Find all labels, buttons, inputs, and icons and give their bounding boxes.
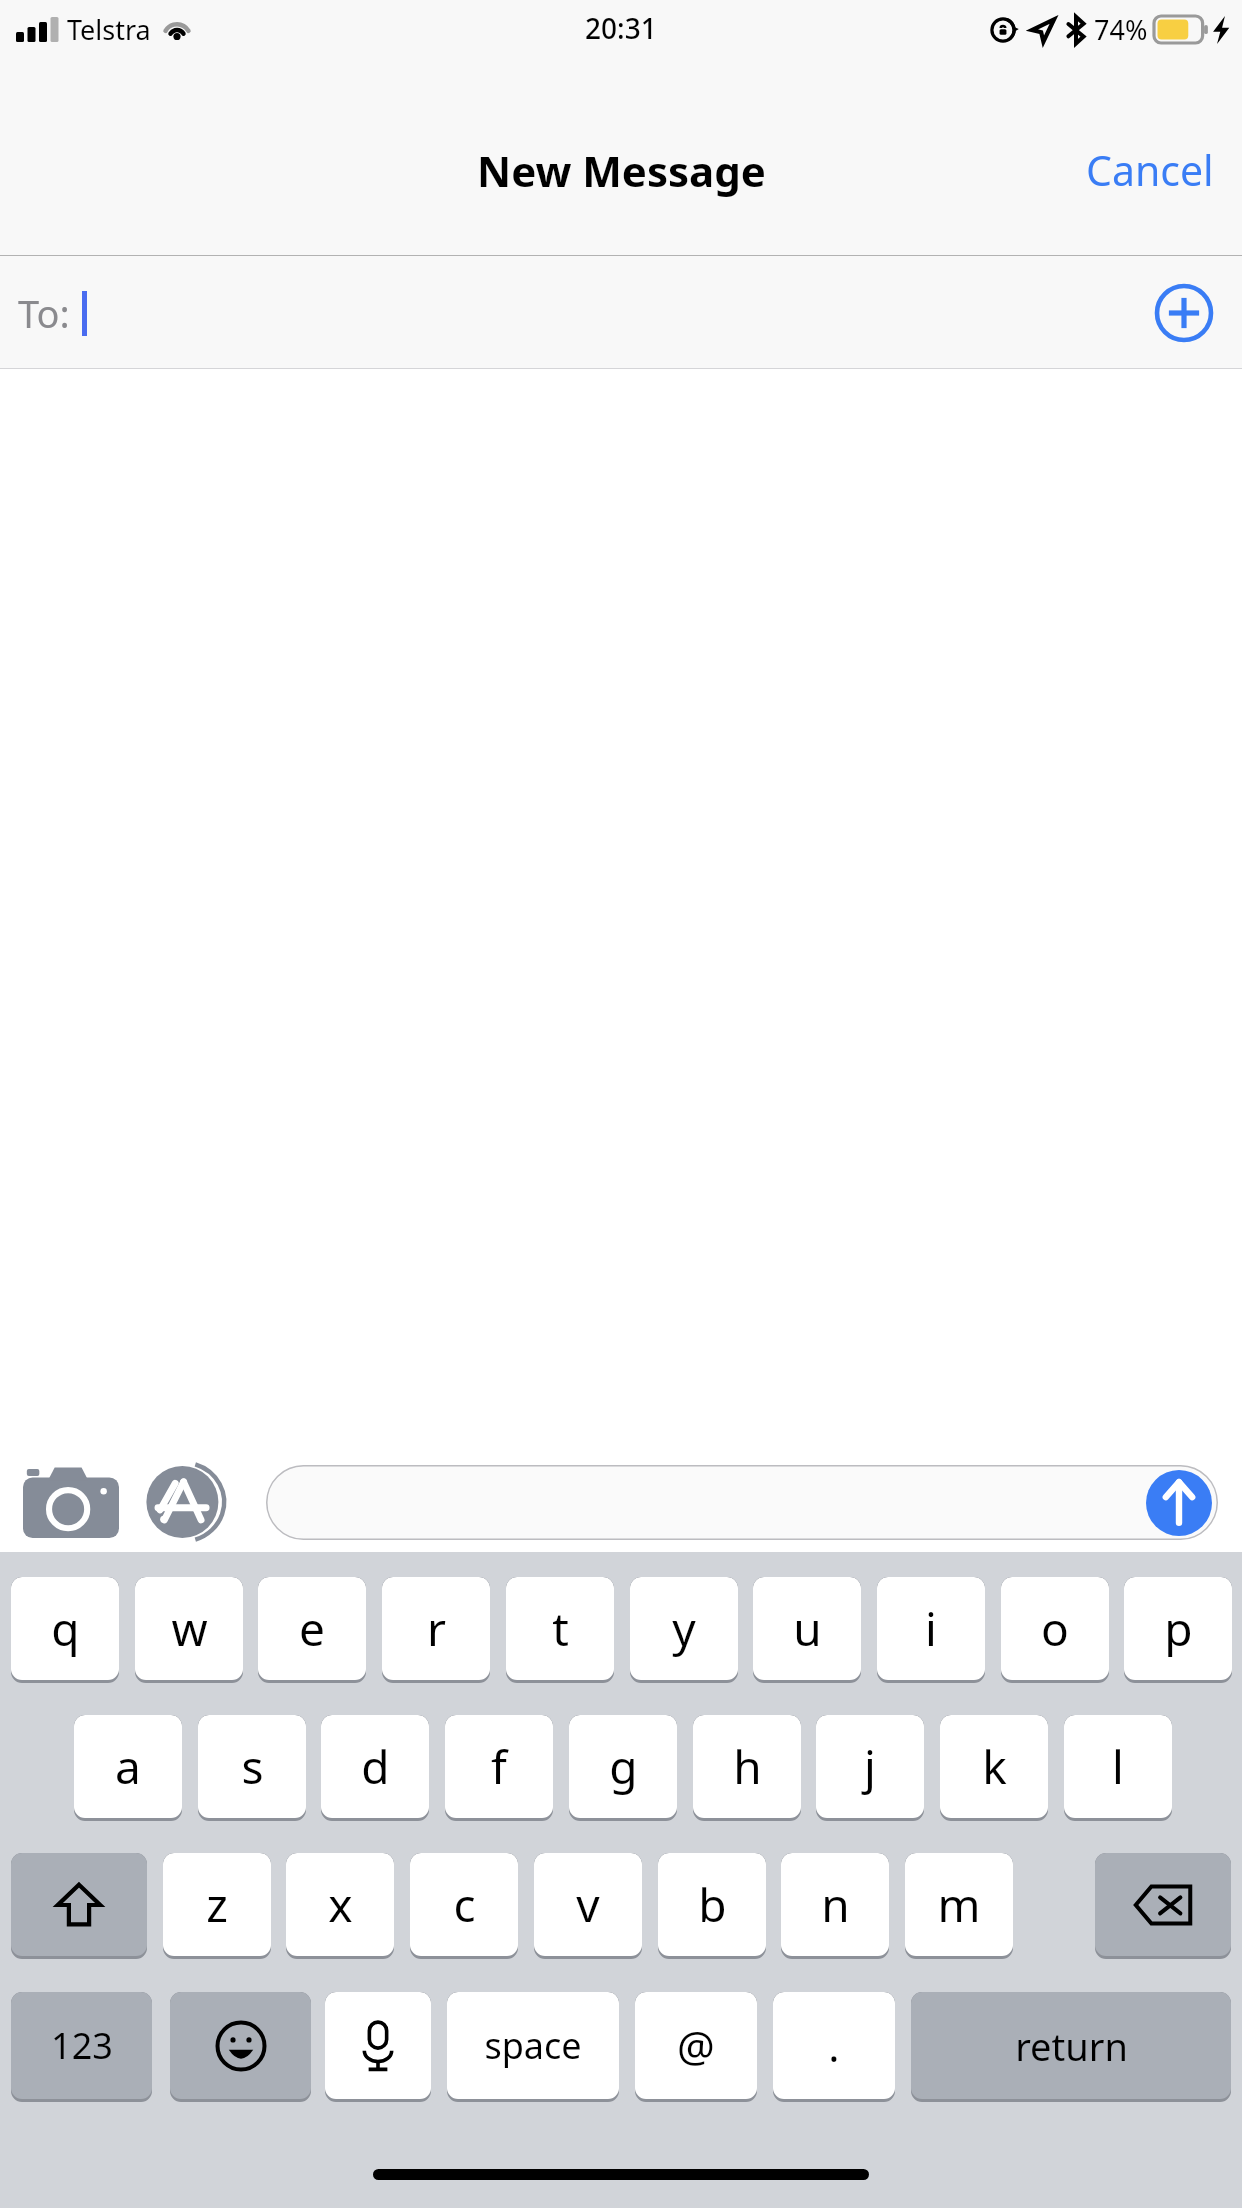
button[interactable]: d xyxy=(321,1715,429,1821)
button[interactable]: To: xyxy=(0,256,1242,369)
button[interactable]: a xyxy=(74,1715,182,1821)
staticText: j xyxy=(864,1735,876,1798)
staticText: u xyxy=(793,1597,822,1660)
button[interactable]: q xyxy=(11,1577,119,1683)
staticText: f xyxy=(491,1735,507,1798)
staticText: e xyxy=(299,1597,325,1660)
staticText: space xyxy=(484,2021,582,2070)
button[interactable]: y xyxy=(630,1577,738,1683)
staticText: y xyxy=(672,1597,696,1660)
button[interactable] xyxy=(170,1992,311,2102)
staticText: return xyxy=(1015,2020,1128,2072)
button[interactable] xyxy=(1095,1853,1231,1959)
button[interactable]: space xyxy=(447,1992,619,2102)
staticText: 74% xyxy=(1094,11,1148,48)
button[interactable]: c xyxy=(410,1853,518,1959)
staticText: n xyxy=(821,1873,850,1936)
staticText: k xyxy=(982,1735,1007,1798)
button[interactable] xyxy=(11,1853,147,1959)
staticText: w xyxy=(171,1597,208,1660)
button[interactable]: l xyxy=(1064,1715,1172,1821)
button[interactable]: Send xyxy=(266,1465,1218,1540)
staticText: s xyxy=(241,1735,264,1798)
staticText: q xyxy=(51,1597,80,1660)
button[interactable]: @ xyxy=(635,1992,757,2102)
button[interactable]: p xyxy=(1124,1577,1232,1683)
staticText: r xyxy=(427,1597,446,1660)
button[interactable]: h xyxy=(693,1715,801,1821)
staticText: @ xyxy=(677,2017,715,2074)
button[interactable]: Cancel xyxy=(1058,128,1242,212)
button[interactable]: k xyxy=(940,1715,1048,1821)
staticText: v xyxy=(576,1873,600,1936)
button[interactable]: return xyxy=(911,1992,1231,2102)
staticText: . xyxy=(828,2017,840,2074)
staticText: h xyxy=(733,1735,762,1798)
button[interactable]: v xyxy=(534,1853,642,1959)
button[interactable]: f xyxy=(445,1715,553,1821)
staticText: i xyxy=(925,1597,937,1660)
button[interactable]: m xyxy=(905,1853,1013,1959)
button[interactable]: Apps xyxy=(138,1457,242,1547)
staticText: 20:31 xyxy=(585,9,657,47)
button[interactable]: w xyxy=(135,1577,243,1683)
button[interactable]: z xyxy=(163,1853,271,1959)
staticText: To: xyxy=(18,287,70,339)
staticText: a xyxy=(115,1735,141,1798)
staticText: b xyxy=(698,1873,727,1936)
staticText: Cancel xyxy=(1086,142,1214,198)
button[interactable]: . xyxy=(773,1992,895,2102)
staticText: c xyxy=(453,1873,476,1936)
button[interactable]: Camera xyxy=(16,1457,126,1547)
staticText: Telstra xyxy=(67,11,151,48)
button[interactable]: b xyxy=(658,1853,766,1959)
button[interactable]: 123 xyxy=(11,1992,152,2102)
staticText: m xyxy=(937,1873,981,1936)
staticText: x xyxy=(328,1873,353,1936)
staticText: 123 xyxy=(51,2021,113,2070)
staticText: z xyxy=(206,1873,228,1936)
button[interactable]: n xyxy=(781,1853,889,1959)
button[interactable] xyxy=(325,1992,431,2102)
button[interactable]: Add contact xyxy=(1154,283,1214,343)
staticText: p xyxy=(1164,1597,1193,1660)
staticText: New Message xyxy=(477,142,766,199)
button[interactable]: o xyxy=(1001,1577,1109,1683)
button[interactable]: g xyxy=(569,1715,677,1821)
button[interactable]: r xyxy=(382,1577,490,1683)
staticText: l xyxy=(1112,1735,1124,1798)
button[interactable]: x xyxy=(286,1853,394,1959)
button[interactable]: s xyxy=(198,1715,306,1821)
staticText: g xyxy=(609,1735,638,1798)
button[interactable]: Send xyxy=(1146,1470,1212,1536)
button[interactable]: t xyxy=(506,1577,614,1683)
button[interactable]: i xyxy=(877,1577,985,1683)
button[interactable]: u xyxy=(753,1577,861,1683)
button[interactable]: e xyxy=(258,1577,366,1683)
staticText: t xyxy=(552,1597,569,1660)
staticText: d xyxy=(361,1735,390,1798)
button[interactable]: j xyxy=(816,1715,924,1821)
staticText: o xyxy=(1041,1597,1069,1660)
